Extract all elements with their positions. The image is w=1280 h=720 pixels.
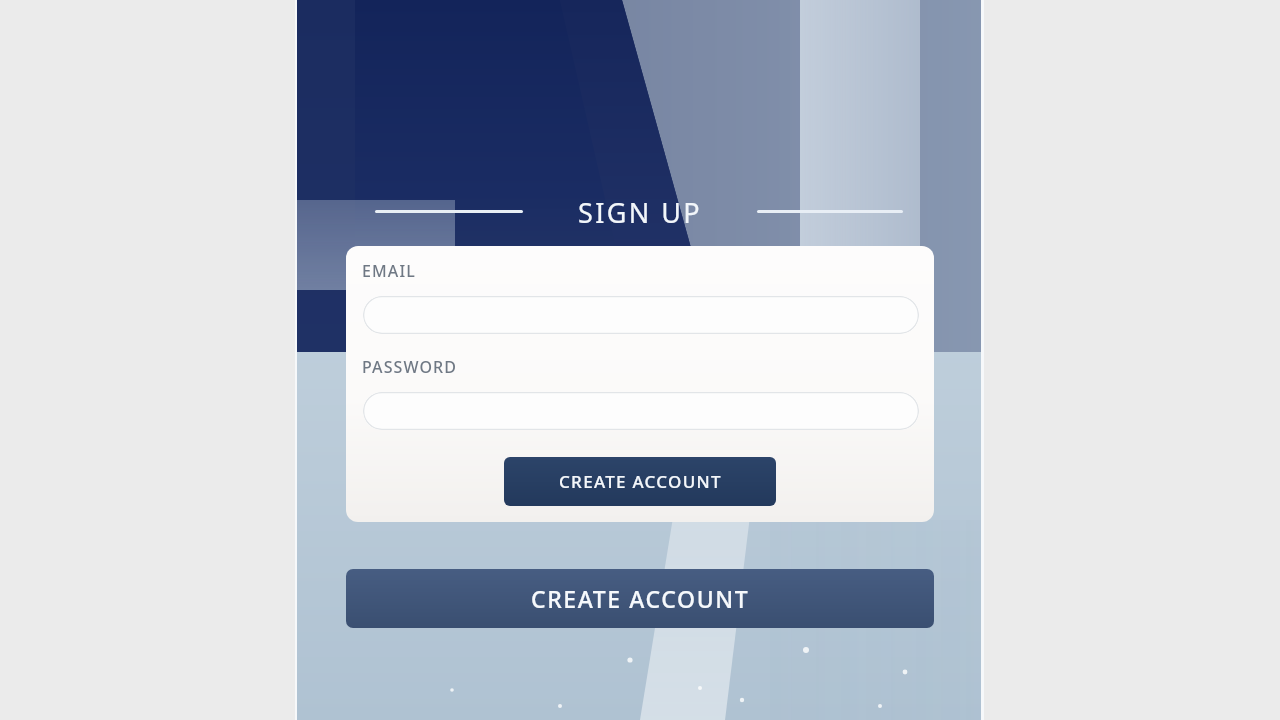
staticText: CREATE ACCOUNT — [531, 583, 750, 614]
staticText: CREATE ACCOUNT — [559, 470, 722, 493]
staticText: SIGN UP — [540, 194, 740, 234]
button[interactable]: Text field — [363, 392, 919, 430]
button[interactable]: CREATE ACCOUNT — [504, 457, 776, 506]
staticText: EMAIL — [362, 260, 416, 282]
button[interactable]: CREATE ACCOUNT — [346, 569, 934, 628]
button[interactable]: Text field — [363, 296, 919, 334]
staticText: PASSWORD — [362, 356, 458, 378]
